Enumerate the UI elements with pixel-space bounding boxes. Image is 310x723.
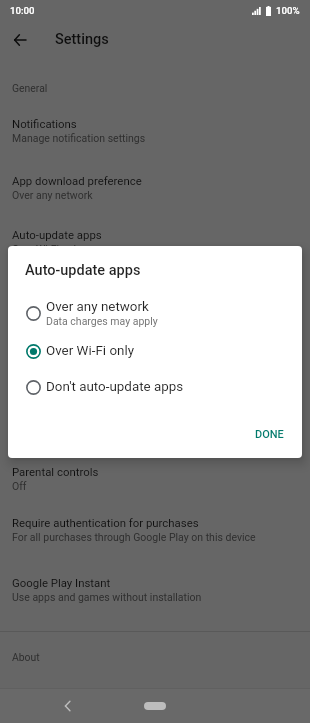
staticText: Off — [12, 480, 27, 492]
staticText: Google Play Instant — [12, 576, 111, 589]
staticText: Require authentication for purchases — [12, 516, 199, 529]
staticText: General — [12, 82, 48, 94]
staticText: Data charges may apply — [46, 315, 158, 327]
button[interactable]: App download preference — [0, 169, 310, 208]
button[interactable]: Back — [53, 692, 81, 720]
staticText: Auto-update apps — [25, 262, 141, 279]
staticText: Manage notification settings — [12, 132, 146, 144]
button[interactable]: Parental controls — [0, 460, 310, 499]
staticText: Use apps and games without installation — [12, 591, 202, 603]
staticText: 100% — [276, 5, 300, 16]
button[interactable]: DONE — [246, 422, 293, 447]
button[interactable]: Back — [4, 24, 36, 56]
button[interactable]: Require authentication for purchases — [0, 511, 310, 550]
staticText: Over any network — [12, 189, 93, 201]
staticText: DONE — [255, 428, 284, 441]
button[interactable]: Home — [144, 702, 166, 710]
button[interactable]: Over Wi-Fi only — [8, 333, 302, 369]
staticText: Don't auto-update apps — [46, 379, 184, 395]
button[interactable]: Auto-update apps — [0, 223, 310, 262]
staticText: Auto-update apps — [12, 228, 102, 241]
staticText: For all purchases through Google Play on… — [12, 531, 256, 543]
staticText: Notifications — [12, 117, 77, 130]
staticText: Over any network — [46, 299, 149, 315]
staticText: Parental controls — [12, 465, 99, 478]
button[interactable]: Notifications — [0, 112, 310, 151]
staticText: Over Wi-Fi only — [46, 343, 135, 359]
button[interactable]: Don't auto-update apps — [8, 369, 302, 405]
staticText: Over Wi-Fi only — [12, 243, 82, 255]
button[interactable]: Over any network — [8, 295, 302, 331]
staticText: Settings — [55, 31, 109, 48]
button[interactable]: Google Play Instant — [0, 571, 310, 610]
staticText: App download preference — [12, 174, 142, 187]
staticText: 10:00 — [10, 5, 35, 16]
staticText: About — [12, 651, 40, 663]
